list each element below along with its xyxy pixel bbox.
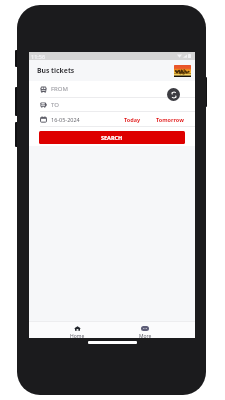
staticText: 11:56: [31, 53, 46, 60]
button[interactable]: Profile: [174, 65, 191, 77]
staticText: TO: [51, 101, 59, 109]
staticText: Home: [70, 333, 85, 338]
button[interactable]: FROM: [29, 81, 195, 97]
button[interactable]: Today: [124, 116, 141, 123]
button[interactable]: Swap from and to: [167, 88, 180, 101]
button[interactable]: Pick date: [40, 116, 47, 123]
button[interactable]: Tomorrow: [156, 116, 184, 123]
staticText: Tomorrow: [156, 116, 184, 123]
button[interactable]: More: [111, 322, 179, 338]
staticText: SEARCH: [101, 134, 123, 141]
staticText: Bus tickets: [37, 66, 75, 75]
button[interactable]: Home: [44, 322, 111, 338]
button[interactable]: SEARCH: [39, 131, 185, 144]
staticText: FROM: [51, 85, 68, 93]
staticText: More: [139, 333, 152, 338]
button[interactable]: TO: [29, 98, 195, 111]
staticText: 16-05-2024: [51, 116, 80, 123]
staticText: Today: [124, 116, 141, 123]
